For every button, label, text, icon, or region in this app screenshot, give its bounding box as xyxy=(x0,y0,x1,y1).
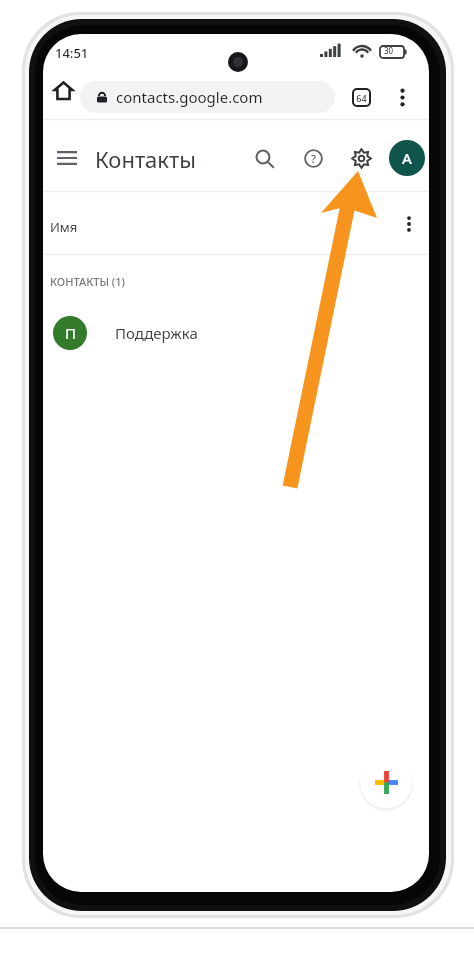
button[interactable]: Menu xyxy=(47,138,87,178)
staticText: Имя xyxy=(50,218,78,236)
button[interactable]: List options xyxy=(391,206,427,242)
staticText: КОНТАКТЫ (1) xyxy=(50,274,126,289)
button[interactable]: П xyxy=(43,306,429,360)
button[interactable]: Settings xyxy=(340,137,382,179)
staticText: 14:51 xyxy=(55,44,89,62)
button[interactable]: Tabs xyxy=(342,78,380,116)
button[interactable]: Search xyxy=(243,137,285,179)
staticText: 30 xyxy=(384,45,394,56)
staticText: Поддержка xyxy=(115,323,198,343)
staticText: contacts.google.com xyxy=(116,87,263,107)
staticText: A xyxy=(402,148,412,168)
button[interactable]: contacts.google.com xyxy=(80,81,335,113)
staticText: 64 xyxy=(356,92,367,104)
staticText: Контакты xyxy=(95,144,196,174)
button[interactable]: Create contact xyxy=(360,756,412,808)
button[interactable]: More options xyxy=(383,78,421,116)
staticText: ? xyxy=(311,151,316,166)
button[interactable]: Help xyxy=(292,137,334,179)
button[interactable]: Home xyxy=(45,72,81,108)
button[interactable]: Google Account xyxy=(389,140,425,176)
staticText: П xyxy=(65,323,76,343)
